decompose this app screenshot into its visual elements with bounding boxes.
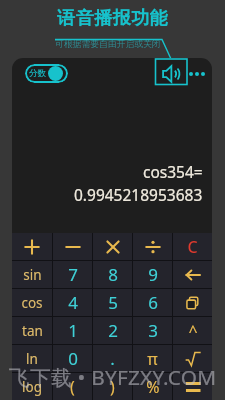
staticText: 7 [68,263,78,286]
button[interactable]: sin [12,261,52,288]
staticText: 1 [68,319,78,342]
staticText: 语音播报功能 [57,7,168,30]
button[interactable]: 3 [133,317,172,344]
button[interactable]: 5 [93,289,132,316]
other: sqrt [184,350,202,368]
staticText: C [187,236,198,258]
button[interactable] [53,233,92,260]
button[interactable]: copy [173,289,212,316]
button[interactable] [12,233,52,260]
staticText: 8 [108,263,118,286]
button[interactable]: ln [12,345,52,372]
staticText: 2 [108,319,118,342]
button[interactable]: . [93,345,132,372]
button[interactable] [93,233,132,260]
staticText: 飞下载 • BYFZXY.COM [9,363,217,391]
button[interactable]: 9 [133,261,172,288]
button[interactable]: tan [12,317,52,344]
button[interactable]: ( [53,373,92,400]
staticText: 3 [148,319,158,342]
staticText: π [147,348,158,370]
button[interactable]: sqrt [173,345,212,372]
button[interactable]: cos [12,289,52,316]
button[interactable]: back [173,261,212,288]
button[interactable]: 6 [133,289,172,316]
staticText: cos354= [143,161,203,182]
staticText: 0.9945218953683 [74,184,203,205]
staticText: cos [21,294,43,312]
staticText: log [22,378,42,396]
button[interactable]: ^ [173,317,212,344]
staticText: 可根据需要自由开启或关闭 [55,39,161,50]
staticText: % [146,376,160,398]
button[interactable]: More options [186,64,208,84]
button[interactable]: 8 [93,261,132,288]
other: eq [184,378,202,396]
button[interactable]: 7 [53,261,92,288]
button[interactable] [133,233,172,260]
staticText: ^ [188,320,198,342]
button[interactable]: log [12,373,52,400]
other: back [184,266,202,284]
staticText: 0 [68,347,78,370]
button[interactable]: 分数 [25,64,68,83]
staticText: tan [22,322,43,340]
staticText: . [110,347,115,370]
button[interactable]: 4 [53,289,92,316]
button[interactable]: 1 [53,317,92,344]
button[interactable]: C [173,233,212,260]
button[interactable]: 0 [53,345,92,372]
staticText: 9 [148,263,158,286]
staticText: 6 [148,291,158,314]
other: copy [184,294,202,312]
button[interactable]: ) [93,373,132,400]
staticText: 5 [108,291,118,314]
button[interactable]: 2 [93,317,132,344]
staticText: 分数 [29,68,46,79]
button[interactable]: % [133,373,172,400]
staticText: ( [70,376,75,398]
staticText: 4 [68,291,78,314]
button[interactable]: eq [173,373,212,400]
staticText: sin [23,266,42,284]
staticText: ) [110,376,115,398]
button[interactable]: Voice broadcast [155,61,187,87]
button[interactable]: π [133,345,172,372]
staticText: ln [26,350,38,368]
